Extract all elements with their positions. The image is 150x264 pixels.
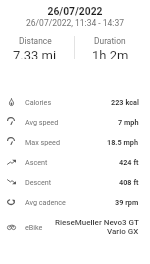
- staticText: Distance: [19, 36, 52, 46]
- staticText: RieseMueller Nevo3 GT: [55, 218, 139, 227]
- staticText: 223 kcal: [111, 98, 139, 107]
- staticText: 39 rpm: [115, 198, 139, 207]
- staticText: Ascent: [25, 158, 48, 166]
- staticText: Duration: [94, 36, 126, 46]
- button[interactable]: Ascent: [0, 152, 150, 172]
- staticText: 1h 2m: [92, 48, 129, 59]
- staticText: Max speed: [25, 138, 60, 146]
- staticText: 408 ft: [119, 178, 139, 187]
- button[interactable]: Avg speed: [0, 112, 150, 132]
- staticText: 7 mph: [118, 118, 139, 127]
- button[interactable]: eBike: [0, 217, 150, 237]
- staticText: 26/07/2022: [0, 5, 150, 17]
- staticText: Calories: [25, 98, 52, 106]
- staticText: Descent: [25, 178, 52, 186]
- staticText: 18.5 mph: [107, 138, 139, 147]
- staticText: Avg speed: [25, 118, 59, 126]
- button[interactable]: Max speed: [0, 132, 150, 152]
- staticText: 26/07/2022, 11:34 - 14:37: [0, 18, 150, 28]
- staticText: eBike: [25, 223, 43, 231]
- button[interactable]: Calories: [0, 92, 150, 112]
- staticText: 7.33 mi: [13, 48, 57, 59]
- button[interactable]: Avg cadence: [0, 192, 150, 212]
- staticText: 424 ft: [119, 158, 139, 167]
- staticText: Vario GX: [107, 227, 139, 236]
- staticText: Avg cadence: [25, 198, 66, 206]
- button[interactable]: Descent: [0, 172, 150, 192]
